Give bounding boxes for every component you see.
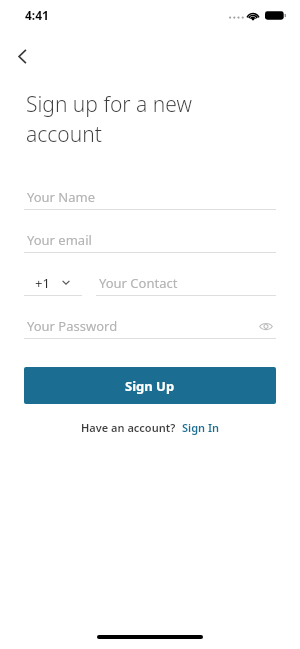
button[interactable]: Your Password xyxy=(24,313,276,338)
button[interactable]: Your email xyxy=(24,227,276,253)
button[interactable]: Sign In xyxy=(182,420,220,435)
staticText: 4:41 xyxy=(25,7,49,23)
staticText: Your Password xyxy=(27,317,256,335)
staticText: Sign up for a new account xyxy=(26,90,192,148)
staticText: Your email xyxy=(27,231,92,249)
button[interactable]: Your Name xyxy=(24,184,276,210)
staticText: Have an account? xyxy=(81,420,176,435)
staticText: Sign Up xyxy=(125,377,175,395)
staticText: Sign In xyxy=(182,420,220,435)
staticText: +1 xyxy=(35,274,50,292)
button[interactable]: Your Contact xyxy=(96,270,276,296)
staticText: Your Contact xyxy=(99,274,178,292)
staticText: Your Name xyxy=(27,188,96,206)
button[interactable]: Sign Up xyxy=(24,367,276,404)
button[interactable]: Back xyxy=(4,38,40,74)
button[interactable]: Show password xyxy=(256,316,276,336)
button[interactable]: +1 xyxy=(24,270,82,296)
